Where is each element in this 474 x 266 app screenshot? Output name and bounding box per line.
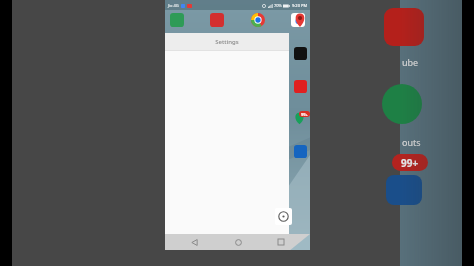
button[interactable]: Back [179, 234, 209, 250]
button[interactable]: Recent apps [266, 234, 296, 250]
button[interactable]: Hangouts [293, 112, 308, 127]
button[interactable]: App icon [294, 47, 307, 60]
staticText: 70% [274, 3, 282, 8]
button[interactable]: Chrome [251, 13, 265, 27]
staticText: 9:20 PM [292, 3, 308, 8]
staticText: ube [402, 56, 419, 68]
staticText: Settings [215, 38, 239, 46]
button[interactable]: Settings [165, 33, 289, 50]
button[interactable]: Google [291, 13, 305, 27]
button[interactable]: App icon [170, 13, 184, 27]
button[interactable]: Toggle [275, 208, 292, 225]
button[interactable]: App icon [210, 13, 224, 27]
button[interactable]: Maps [293, 13, 307, 27]
button[interactable]: App icon [294, 80, 307, 93]
button[interactable]: Home [223, 234, 253, 250]
staticText: Jio 4G [168, 3, 179, 8]
staticText: 99+ [301, 112, 308, 117]
staticText: G [295, 15, 301, 26]
staticText: outs [402, 136, 421, 148]
button[interactable]: App icon [294, 145, 307, 158]
staticText: 99+ [401, 156, 419, 170]
